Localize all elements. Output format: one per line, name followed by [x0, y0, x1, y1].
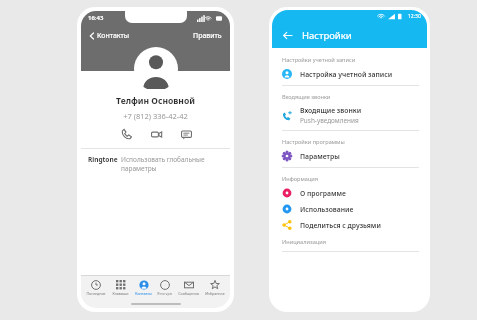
button[interactable]: Использование — [272, 201, 427, 217]
staticText: Ringtone — [88, 155, 118, 164]
button[interactable]: Контакты — [87, 29, 132, 43]
staticText: Push-уведомления — [300, 116, 359, 125]
staticText: Сообщения — [178, 291, 199, 296]
staticText: Телфин Основной — [81, 95, 230, 107]
staticText: Избранное — [205, 291, 225, 296]
button[interactable]: Входящие звонки — [272, 103, 427, 128]
staticText: Настройки учетной записи — [282, 56, 356, 64]
button[interactable]: Последние — [85, 280, 107, 296]
staticText: 16:43 — [88, 14, 104, 22]
staticText: Настройки — [302, 29, 352, 42]
button[interactable]: Call — [118, 126, 134, 142]
button[interactable]: Я по vpn — [156, 280, 173, 296]
staticText: Использование — [300, 205, 354, 214]
button[interactable]: Video call — [148, 126, 164, 142]
staticText: Информация — [282, 175, 319, 183]
staticText: Настройка учетной записи — [300, 70, 393, 79]
staticText: Править — [193, 31, 222, 41]
staticText: Контакты — [97, 31, 130, 41]
staticText: Клавиши — [112, 291, 129, 296]
button[interactable]: Параметры — [272, 148, 427, 164]
button[interactable]: Message — [178, 126, 194, 142]
staticText: О программе — [300, 189, 346, 198]
staticText: Использовать глобальные параметры — [121, 155, 223, 173]
button[interactable]: Поделиться с друзьями — [272, 217, 427, 233]
button[interactable]: Править — [191, 29, 224, 43]
button[interactable]: Избранное — [204, 280, 226, 296]
button[interactable]: Контакты — [134, 280, 153, 296]
staticText: Я по vpn — [157, 291, 172, 296]
button[interactable]: Back — [280, 28, 294, 42]
staticText: +7 (812) 336-42-42 — [81, 111, 230, 121]
staticText: Последние — [86, 291, 106, 296]
button[interactable]: Настройка учетной записи — [272, 66, 427, 82]
staticText: Настройки программы — [282, 138, 345, 146]
staticText: Контакты — [135, 291, 152, 296]
button[interactable]: Сообщения — [177, 280, 200, 296]
button[interactable]: Клавиши — [111, 280, 130, 296]
staticText: Параметры — [300, 152, 340, 161]
staticText: 12:30 — [408, 13, 421, 20]
button[interactable]: Ringtone — [81, 155, 230, 173]
staticText: Входящие звонки — [282, 93, 331, 101]
staticText: Поделиться с друзьями — [300, 221, 381, 230]
staticText: Входящие звонки — [300, 106, 362, 115]
staticText: Инициализация — [282, 238, 326, 246]
button[interactable]: О программе — [272, 185, 427, 201]
